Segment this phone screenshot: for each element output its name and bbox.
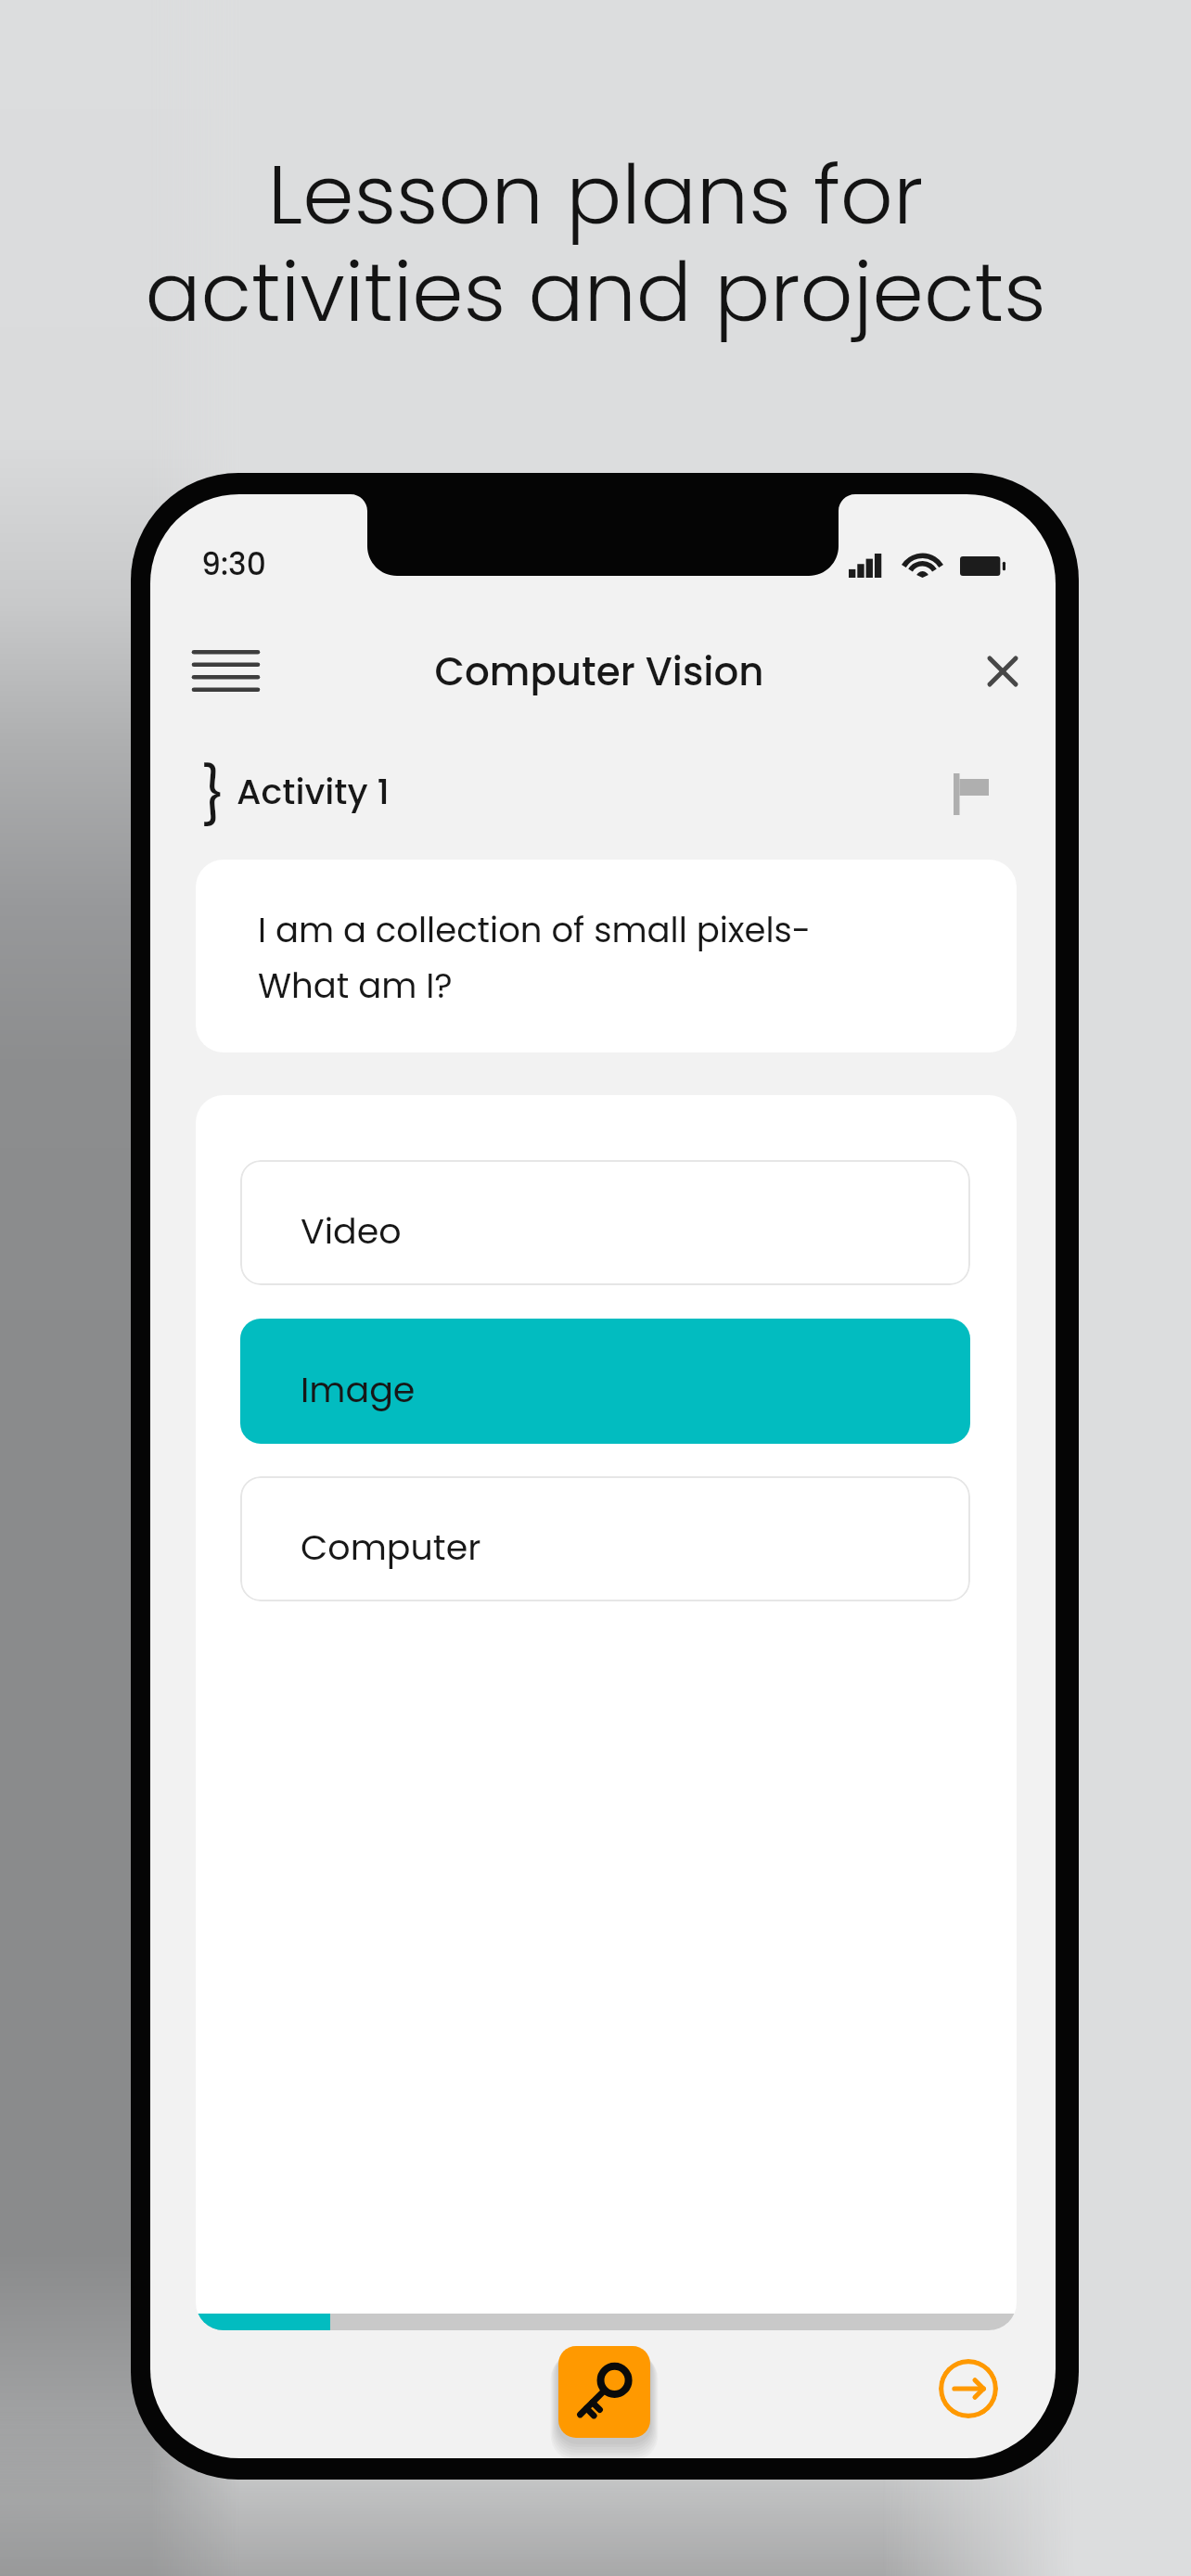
staticText: Video	[301, 1206, 402, 1256]
button[interactable]: Image	[240, 1319, 970, 1444]
button[interactable]: Video	[240, 1160, 970, 1285]
button[interactable]: Report	[938, 760, 1005, 827]
staticText: Computer Vision	[150, 644, 1052, 699]
button[interactable]: Close	[972, 641, 1032, 701]
staticText: }	[200, 758, 226, 835]
staticText: Activity 1	[237, 767, 390, 816]
staticText: Image	[301, 1365, 416, 1414]
staticText: I am a collection of small pixels- What …	[258, 906, 812, 1010]
button[interactable]: Menu	[181, 631, 271, 710]
button[interactable]: Hint	[558, 2346, 650, 2438]
staticText: Lesson plans for activities and projects	[0, 137, 1191, 350]
staticText: 9:30	[201, 542, 266, 585]
staticText: Computer	[301, 1523, 481, 1572]
button[interactable]: Computer	[240, 1476, 970, 1601]
button[interactable]: Next	[939, 2359, 998, 2418]
